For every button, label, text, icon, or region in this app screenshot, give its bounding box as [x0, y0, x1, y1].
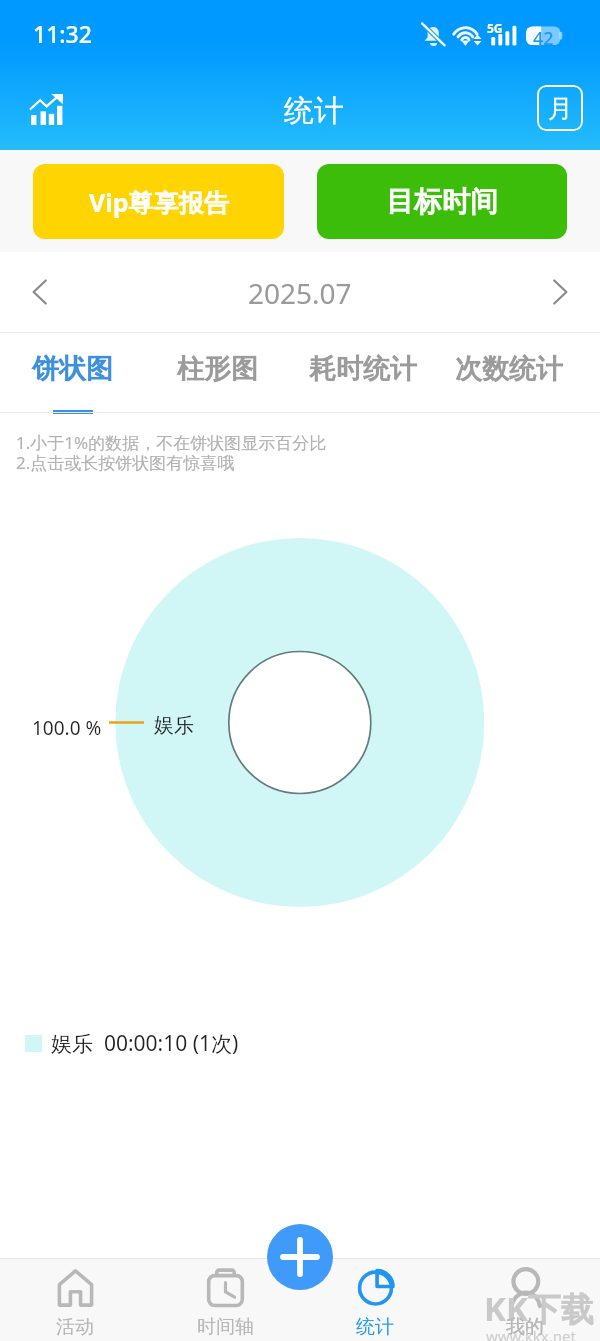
- staticText: 耗时统计: [309, 352, 417, 386]
- staticText: 目标时间: [386, 184, 498, 219]
- staticText: www.kkx.net: [486, 1326, 576, 1341]
- staticText: 我的: [506, 1315, 544, 1339]
- staticText: KK下载: [484, 1286, 594, 1331]
- staticText: 娱乐: [154, 713, 194, 738]
- button[interactable]: 耗时统计: [290, 333, 436, 412]
- staticText: 统计: [356, 1315, 394, 1339]
- staticText: 次数统计: [455, 352, 563, 386]
- button[interactable]: 统计: [300, 1258, 450, 1341]
- staticText: 统计: [284, 92, 344, 130]
- button[interactable]: 饼状图: [0, 333, 145, 412]
- button[interactable]: 目标时间: [317, 164, 567, 239]
- staticText: 我的: [506, 1315, 544, 1339]
- staticText: 娱乐 00:00:10 (1次): [51, 1029, 239, 1058]
- staticText: 1.小于1%的数据，不在饼状图显示百分比: [16, 431, 327, 454]
- staticText: 5G: [487, 20, 503, 36]
- staticText: 活动: [56, 1315, 94, 1339]
- button[interactable]: 月: [537, 85, 583, 131]
- staticText: 42: [533, 26, 554, 51]
- button[interactable]: Previous month: [18, 270, 62, 314]
- button[interactable]: 柱形图: [145, 333, 290, 412]
- staticText: 2.点击或长按饼状图有惊喜哦: [16, 451, 235, 474]
- button[interactable]: Add: [267, 1224, 333, 1290]
- staticText: 时间轴: [197, 1315, 254, 1339]
- button[interactable]: 次数统计: [436, 333, 582, 412]
- button[interactable]: 时间轴: [150, 1258, 300, 1341]
- staticText: 2025.07: [248, 274, 352, 312]
- staticText: 柱形图: [177, 352, 258, 386]
- staticText: 饼状图: [32, 352, 113, 386]
- button[interactable]: 我的: [450, 1258, 600, 1341]
- button[interactable]: Next month: [538, 270, 582, 314]
- staticText: Vip尊享报告: [89, 185, 229, 219]
- button[interactable]: Vip尊享报告: [33, 164, 284, 239]
- staticText: 11:32: [33, 18, 92, 49]
- button[interactable]: 活动: [0, 1258, 150, 1341]
- staticText: 100.0 %: [32, 715, 102, 741]
- staticText: 月: [548, 93, 573, 124]
- button[interactable]: Report: [24, 87, 68, 131]
